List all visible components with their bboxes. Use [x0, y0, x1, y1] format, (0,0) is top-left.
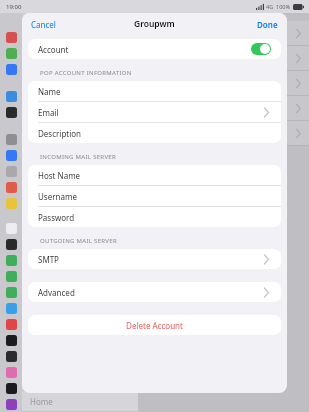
button[interactable]: App [6, 351, 17, 362]
button[interactable]: Account [28, 39, 281, 59]
button[interactable]: Name [28, 81, 281, 101]
staticText: Account [38, 44, 251, 55]
button[interactable]: App [6, 182, 17, 193]
staticText: 100% [276, 3, 291, 10]
button[interactable]: App [6, 198, 17, 209]
staticText: 19:00 [6, 3, 22, 11]
button[interactable]: App [6, 367, 17, 378]
staticText: Password [38, 212, 271, 223]
button[interactable]: App [6, 271, 17, 282]
button[interactable]: App [6, 255, 17, 266]
button[interactable]: Description [28, 123, 281, 143]
staticText: Description [38, 128, 271, 139]
staticText: Home [30, 396, 53, 407]
staticText: Host Name [38, 170, 271, 181]
staticText: Username [38, 191, 271, 202]
button[interactable]: Delete Account [28, 315, 281, 335]
button[interactable]: App [6, 64, 17, 75]
button[interactable]: App [6, 150, 17, 161]
staticText: SMTP [38, 254, 262, 265]
button[interactable]: Setting [138, 121, 309, 145]
staticText: Name [38, 86, 271, 97]
button[interactable]: App [6, 107, 17, 118]
staticText: Advanced [38, 287, 262, 298]
staticText: Done [257, 19, 278, 30]
button[interactable]: Setting [138, 96, 309, 120]
staticText: Groupwm [134, 18, 175, 30]
staticText: Delete Account [38, 320, 271, 331]
staticText: Settings [30, 21, 71, 35]
button[interactable]: Username [28, 186, 281, 206]
staticText: OUTGOING MAIL SERVER [40, 237, 117, 245]
button[interactable]: App [6, 32, 17, 43]
button[interactable]: Setting [138, 21, 309, 45]
button[interactable]: App [6, 383, 17, 394]
button[interactable]: App [6, 48, 17, 59]
staticText: Email [38, 107, 262, 118]
button[interactable]: Done [249, 15, 287, 34]
staticText: INCOMING MAIL SERVER [40, 153, 116, 161]
button[interactable]: Email [28, 102, 281, 122]
button[interactable]: App [6, 134, 17, 145]
button[interactable]: Setting [138, 46, 309, 70]
button[interactable]: Setting [138, 71, 309, 95]
button[interactable]: Account enabled [251, 43, 271, 55]
button[interactable]: App [6, 287, 17, 298]
staticText: Cancel [31, 19, 56, 30]
button[interactable]: App [6, 239, 17, 250]
staticText: POP ACCOUNT INFORMATION [40, 69, 132, 77]
button[interactable]: Home [22, 391, 138, 411]
button[interactable]: App [6, 399, 17, 410]
button[interactable]: App [6, 303, 17, 314]
button[interactable]: Cancel [22, 15, 64, 34]
staticText: 4G [266, 3, 274, 10]
button[interactable]: App [6, 91, 17, 102]
button[interactable]: App [6, 319, 17, 330]
button[interactable]: App [6, 223, 17, 234]
button[interactable]: Advanced [28, 282, 281, 302]
button[interactable]: SMTP [28, 249, 281, 269]
button[interactable]: Password [28, 207, 281, 227]
button[interactable]: App [6, 166, 17, 177]
button[interactable]: Host Name [28, 165, 281, 185]
button[interactable]: App [6, 335, 17, 346]
